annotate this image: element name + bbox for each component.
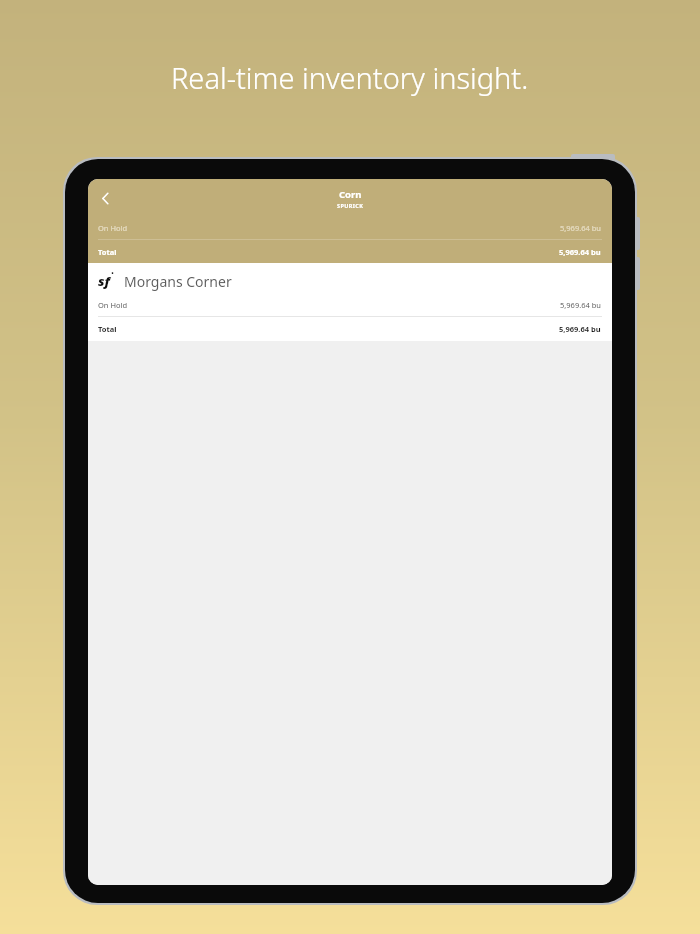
staticText: Corn [339,188,362,201]
staticText: On Hold [98,300,128,310]
button[interactable]: sf [88,263,612,341]
staticText: 5,969.64 bu [560,300,601,310]
button[interactable]: On Hold [88,217,612,239]
staticText: Real-time inventory insight. [171,58,529,97]
staticText: On Hold [98,223,128,233]
button[interactable]: Back [88,181,122,215]
button[interactable]: On Hold [88,294,612,316]
staticText: Morgans Corner [124,272,232,291]
staticText: Total [98,324,117,334]
staticText: 5,969.64 bu [559,247,601,257]
button[interactable]: Total [88,317,612,341]
staticText: SPURICK [337,202,364,209]
button[interactable]: Total [88,240,612,263]
staticText: 5,969.64 bu [559,324,601,334]
staticText: 5,969.64 bu [560,223,601,233]
staticText: sf [98,272,110,290]
staticText: Total [98,247,117,257]
